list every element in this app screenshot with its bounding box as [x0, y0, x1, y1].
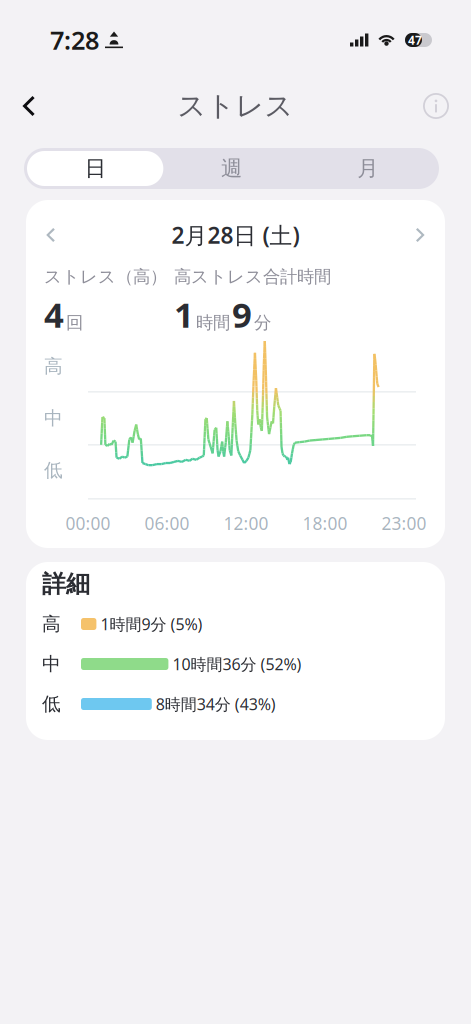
- staticText: 詳細: [42, 569, 90, 599]
- staticText: 回: [66, 312, 83, 333]
- button[interactable]: Next day: [406, 218, 445, 252]
- staticText: 10時間36分 (52%): [172, 653, 301, 675]
- staticText: 高ストレス合計時間: [174, 266, 331, 287]
- staticText: 週: [221, 155, 242, 182]
- staticText: 1時間9分 (5%): [100, 613, 202, 635]
- button[interactable]: 月: [300, 151, 436, 186]
- staticText: 00:00: [65, 512, 110, 535]
- staticText: 12:00: [223, 512, 268, 535]
- button[interactable]: Back: [0, 80, 50, 132]
- button[interactable]: 日: [27, 151, 163, 186]
- staticText: 中: [44, 407, 63, 430]
- staticText: 1: [174, 291, 194, 337]
- staticText: 2月28日 (土): [171, 220, 299, 250]
- staticText: 中: [42, 652, 61, 675]
- staticText: 47: [408, 32, 422, 48]
- staticText: 低: [42, 692, 61, 715]
- staticText: 18:00: [302, 512, 347, 535]
- staticText: 4: [44, 291, 64, 337]
- staticText: 9: [232, 291, 252, 337]
- staticText: 低: [44, 459, 63, 482]
- staticText: ストレス（高）: [44, 266, 167, 287]
- staticText: 日: [85, 155, 106, 182]
- staticText: 8時間34分 (43%): [156, 693, 276, 715]
- staticText: 高: [42, 612, 61, 635]
- staticText: 分: [254, 312, 271, 333]
- staticText: 7:28: [50, 23, 99, 57]
- staticText: 時間: [196, 312, 230, 333]
- button[interactable]: Previous day: [26, 218, 65, 252]
- staticText: 月: [357, 155, 378, 182]
- button[interactable]: Information: [409, 80, 471, 132]
- staticText: 高: [44, 355, 63, 378]
- staticText: 23:00: [381, 512, 426, 535]
- button[interactable]: 週: [163, 151, 300, 186]
- staticText: ストレス: [177, 89, 293, 123]
- staticText: 06:00: [144, 512, 189, 535]
